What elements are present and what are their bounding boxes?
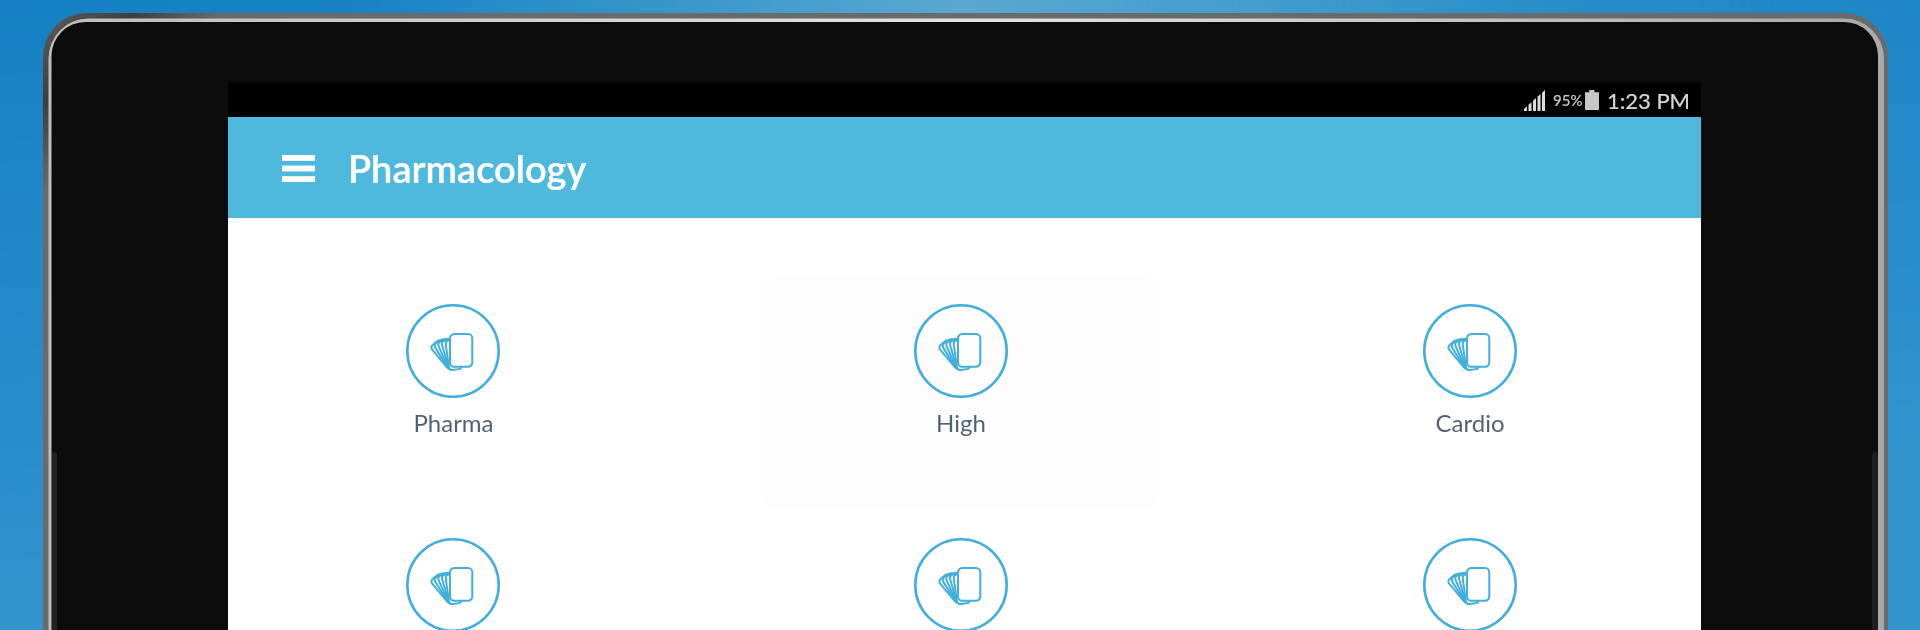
button[interactable]: High (841, 278, 1081, 478)
button[interactable] (841, 512, 1081, 630)
button[interactable] (333, 512, 573, 630)
button[interactable]: Cardio (1350, 278, 1590, 478)
button[interactable] (1350, 512, 1590, 630)
staticText: 1:23 PM (1607, 87, 1691, 113)
staticText: High (936, 408, 986, 437)
button[interactable]: Open navigation menu (268, 138, 328, 198)
staticText: Pharmacology (348, 145, 587, 191)
staticText: 95% (1553, 91, 1583, 109)
staticText: Cardio (1435, 408, 1505, 437)
button[interactable]: Pharma (333, 278, 573, 478)
staticText: Pharma (413, 408, 494, 437)
